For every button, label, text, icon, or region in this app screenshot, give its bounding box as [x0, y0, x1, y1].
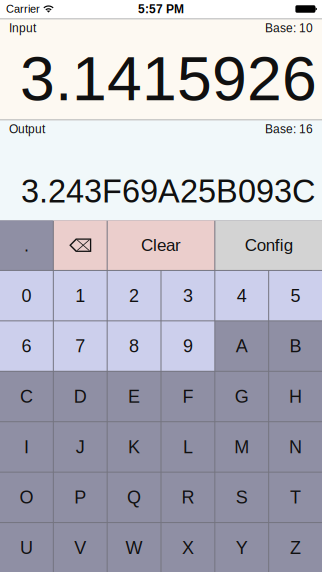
staticText: T	[290, 487, 301, 507]
staticText: I	[24, 437, 29, 457]
staticText: 5	[291, 286, 301, 306]
staticText: 9	[183, 336, 193, 356]
button[interactable]: J	[54, 422, 107, 472]
staticText: .	[24, 235, 29, 255]
staticText: Q	[127, 487, 141, 507]
button[interactable]: 7	[54, 321, 107, 371]
staticText: U	[20, 538, 33, 558]
button[interactable]: O	[0, 473, 53, 522]
button[interactable]: 6	[0, 321, 53, 371]
staticText: R	[181, 487, 194, 507]
button[interactable]: Y	[215, 523, 268, 572]
button[interactable]: 8	[108, 321, 160, 371]
staticText: W	[126, 538, 143, 558]
staticText: Config	[245, 236, 293, 255]
staticText: Base: 16	[265, 122, 313, 136]
button[interactable]: 5	[269, 271, 322, 320]
button[interactable]: 4	[215, 271, 268, 320]
staticText: 7	[75, 336, 85, 356]
staticText: Z	[290, 538, 301, 558]
staticText: 3.1415926	[20, 44, 317, 113]
button[interactable]: 2	[108, 271, 160, 320]
staticText: E	[128, 386, 140, 406]
staticText: B	[290, 336, 302, 356]
staticText: M	[234, 437, 249, 457]
staticText: Carrier	[6, 3, 40, 15]
staticText: 4	[237, 286, 247, 306]
button[interactable]: K	[108, 422, 160, 472]
button[interactable]: R	[161, 473, 214, 522]
staticText: Y	[236, 538, 248, 558]
staticText: 6	[21, 336, 31, 356]
staticText: G	[235, 386, 249, 406]
button[interactable]: Backspace	[54, 220, 107, 270]
staticText: J	[76, 437, 85, 457]
button[interactable]: 0	[0, 271, 53, 320]
button[interactable]: S	[215, 473, 268, 522]
staticText: 5:57 PM	[138, 2, 184, 16]
staticText: L	[183, 437, 193, 457]
staticText: F	[182, 386, 193, 406]
staticText: P	[74, 487, 86, 507]
button[interactable]: P	[54, 473, 107, 522]
staticText: 0	[21, 286, 31, 306]
button[interactable]: Clear	[108, 220, 214, 270]
button[interactable]: V	[54, 523, 107, 572]
staticText: 8	[129, 336, 139, 356]
staticText: Output	[9, 122, 45, 136]
button[interactable]: 3	[161, 271, 214, 320]
staticText: K	[128, 437, 140, 457]
button[interactable]: L	[161, 422, 214, 472]
button[interactable]: W	[108, 523, 160, 572]
staticText: H	[289, 386, 302, 406]
staticText: C	[20, 386, 33, 406]
staticText: X	[182, 538, 194, 558]
button[interactable]: Config	[215, 220, 322, 270]
button[interactable]: A	[215, 321, 268, 371]
button[interactable]: G	[215, 372, 268, 421]
staticText: N	[289, 437, 302, 457]
button[interactable]: 1	[54, 271, 107, 320]
button[interactable]: Q	[108, 473, 160, 522]
staticText: Clear	[141, 236, 181, 255]
staticText: Base: 10	[265, 21, 313, 35]
button[interactable]: D	[54, 372, 107, 421]
button[interactable]: H	[269, 372, 322, 421]
button[interactable]: T	[269, 473, 322, 522]
button[interactable]: E	[108, 372, 160, 421]
button[interactable]: M	[215, 422, 268, 472]
button[interactable]: F	[161, 372, 214, 421]
button[interactable]: 9	[161, 321, 214, 371]
button[interactable]: U	[0, 523, 53, 572]
staticText: 1	[75, 286, 85, 306]
button[interactable]: X	[161, 523, 214, 572]
staticText: 3.243F69A25B093C	[21, 173, 315, 209]
staticText: D	[74, 386, 87, 406]
staticText: V	[74, 538, 86, 558]
button[interactable]: B	[269, 321, 322, 371]
button[interactable]: C	[0, 372, 53, 421]
button[interactable]: N	[269, 422, 322, 472]
staticText: O	[19, 487, 33, 507]
staticText: 3	[183, 286, 193, 306]
staticText: Input	[9, 21, 36, 35]
staticText: 2	[129, 286, 139, 306]
staticText: A	[236, 336, 248, 356]
button[interactable]: Z	[269, 523, 322, 572]
staticText: S	[236, 487, 248, 507]
button[interactable]: .	[0, 220, 53, 270]
button[interactable]: I	[0, 422, 53, 472]
